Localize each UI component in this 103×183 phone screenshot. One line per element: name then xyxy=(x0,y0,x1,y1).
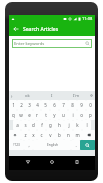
staticText: 8 xyxy=(71,102,74,108)
staticText: ?123 xyxy=(13,143,20,147)
staticText: v xyxy=(49,132,52,138)
button[interactable]: Backspace xyxy=(82,130,95,140)
staticText: 6 xyxy=(53,102,56,108)
staticText: p xyxy=(89,112,92,118)
button[interactable]: Back xyxy=(9,22,23,36)
staticText: e xyxy=(28,112,31,118)
staticText: English xyxy=(47,143,58,147)
button[interactable]: z xyxy=(21,130,29,140)
staticText: 1 xyxy=(12,102,15,108)
staticText: 0 xyxy=(89,102,92,108)
staticText: h xyxy=(58,122,61,128)
staticText: m xyxy=(75,132,80,138)
button[interactable]: 9 xyxy=(77,100,86,110)
staticText: l xyxy=(86,122,88,128)
button[interactable]: w xyxy=(17,110,25,120)
staticText: 3 xyxy=(28,102,31,108)
button[interactable]: t xyxy=(41,110,50,120)
button[interactable]: y xyxy=(50,110,59,120)
button[interactable]: , xyxy=(24,140,33,150)
button[interactable]: l xyxy=(82,120,91,130)
button[interactable]: u xyxy=(59,110,68,120)
staticText: f xyxy=(41,122,43,128)
button[interactable]: 4 xyxy=(33,100,41,110)
button[interactable]: 7 xyxy=(59,100,68,110)
staticText: 2 xyxy=(20,102,23,108)
button[interactable]: Recents xyxy=(71,156,83,168)
button[interactable]: 0 xyxy=(86,100,95,110)
button[interactable]: c xyxy=(37,130,46,140)
button[interactable]: Search xyxy=(80,140,95,150)
button[interactable]: ?123 xyxy=(9,140,24,150)
button[interactable]: g xyxy=(46,120,55,130)
button[interactable]: b xyxy=(55,130,64,140)
staticText: , xyxy=(28,142,30,148)
staticText: r xyxy=(36,112,38,118)
button[interactable]: . xyxy=(71,140,80,150)
button[interactable]: f xyxy=(37,120,46,130)
staticText: w xyxy=(19,112,23,118)
button[interactable]: 3 xyxy=(25,100,33,110)
staticText: I xyxy=(51,93,53,99)
staticText: › xyxy=(11,93,13,99)
button[interactable]: v xyxy=(46,130,55,140)
staticText: t xyxy=(45,112,47,118)
button[interactable]: i xyxy=(68,110,77,120)
button[interactable]: h xyxy=(55,120,64,130)
staticText: k xyxy=(76,122,79,128)
staticText: 5 xyxy=(44,102,47,108)
button[interactable]: x xyxy=(29,130,37,140)
staticText: x xyxy=(32,132,35,138)
button[interactable]: 8 xyxy=(68,100,77,110)
button[interactable]: k xyxy=(73,120,82,130)
button[interactable]: q xyxy=(9,110,17,120)
staticText: a xyxy=(16,122,19,128)
button[interactable]: m xyxy=(73,130,82,140)
staticText: 7 xyxy=(62,102,65,108)
staticText: d xyxy=(32,122,35,128)
button[interactable]: 5 xyxy=(41,100,50,110)
button[interactable]: I'm xyxy=(64,91,88,100)
button[interactable]: a xyxy=(13,120,21,130)
button[interactable]: j xyxy=(64,120,73,130)
button[interactable]: ok xyxy=(15,91,40,100)
staticText: n xyxy=(67,132,70,138)
staticText: Enter keywords xyxy=(14,41,45,47)
button[interactable]: d xyxy=(29,120,37,130)
staticText: o xyxy=(80,112,83,118)
button[interactable]: e xyxy=(25,110,33,120)
staticText: b xyxy=(58,132,61,138)
button[interactable]: More xyxy=(9,91,15,100)
staticText: I'm xyxy=(73,93,80,99)
staticText: 11:08 xyxy=(82,16,93,21)
button[interactable]: Shift xyxy=(9,130,21,140)
staticText: 4 xyxy=(36,102,39,108)
button[interactable]: Enter keywords xyxy=(14,39,90,48)
button[interactable]: 2 xyxy=(17,100,25,110)
staticText: i xyxy=(72,112,74,118)
staticText: u xyxy=(62,112,65,118)
button[interactable]: s xyxy=(21,120,29,130)
staticText: g xyxy=(49,122,52,128)
staticText: s xyxy=(24,122,27,128)
staticText: j xyxy=(68,122,70,128)
button[interactable]: p xyxy=(86,110,95,120)
button[interactable]: English xyxy=(33,140,71,150)
staticText: 9 xyxy=(80,102,83,108)
staticText: q xyxy=(12,112,15,118)
button[interactable]: I xyxy=(40,91,64,100)
button[interactable]: 1 xyxy=(9,100,17,110)
staticText: z xyxy=(24,132,27,138)
button[interactable]: Back xyxy=(22,156,34,168)
staticText: ok xyxy=(25,93,30,99)
button[interactable]: r xyxy=(33,110,41,120)
staticText: y xyxy=(53,112,56,118)
button[interactable]: n xyxy=(64,130,73,140)
button[interactable]: 6 xyxy=(50,100,59,110)
staticText: c xyxy=(40,132,43,138)
button[interactable]: Settings xyxy=(88,91,95,100)
button[interactable]: o xyxy=(77,110,86,120)
staticText: Search Articles xyxy=(23,26,59,33)
button[interactable]: Home xyxy=(46,156,58,168)
staticText: . xyxy=(75,142,77,148)
